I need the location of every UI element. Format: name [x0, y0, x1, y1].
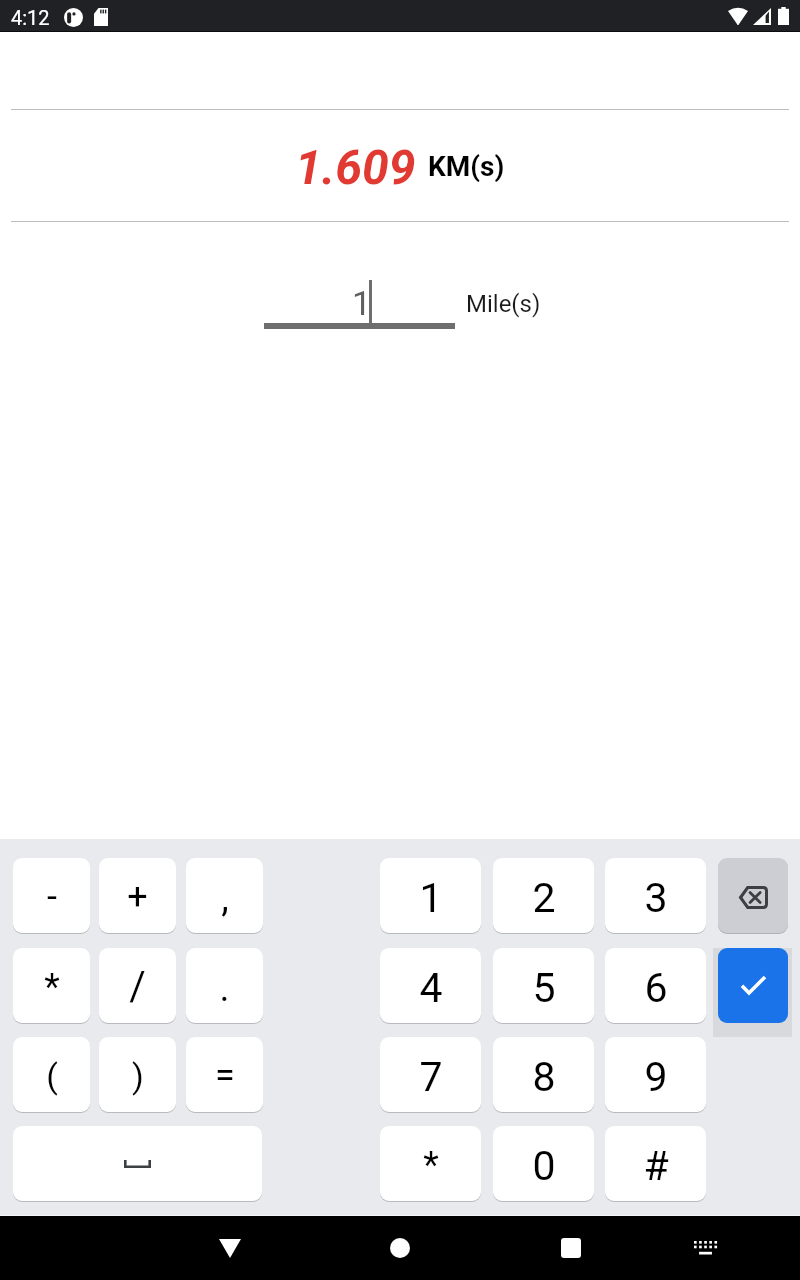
- button[interactable]: .: [186, 948, 263, 1023]
- button[interactable]: Home: [360, 1216, 440, 1280]
- staticText: #: [643, 1142, 669, 1190]
- staticText: /: [129, 963, 146, 1010]
- button[interactable]: (: [13, 1037, 90, 1112]
- staticText: 3: [644, 874, 668, 922]
- staticText: 6: [644, 964, 668, 1012]
- button[interactable]: 7: [380, 1037, 481, 1112]
- staticText: .: [219, 966, 230, 1011]
- button[interactable]: Space: [13, 1126, 262, 1201]
- staticText: 7: [419, 1053, 443, 1101]
- button[interactable]: 9: [605, 1037, 706, 1112]
- button[interactable]: -: [13, 858, 90, 933]
- staticText: Mile(s): [466, 290, 541, 318]
- button[interactable]: Backspace: [718, 858, 788, 933]
- button[interactable]: 0: [493, 1126, 594, 1201]
- staticText: 4: [419, 964, 443, 1012]
- staticText: ,: [221, 876, 229, 921]
- button[interactable]: =: [186, 1037, 263, 1112]
- staticText: (: [46, 1056, 58, 1096]
- button[interactable]: 8: [493, 1037, 594, 1112]
- staticText: 9: [644, 1053, 668, 1101]
- button[interactable]: 1: [380, 858, 481, 933]
- button[interactable]: 6: [605, 948, 706, 1023]
- staticText: 8: [532, 1053, 556, 1101]
- staticText: 1: [419, 874, 443, 922]
- button[interactable]: /: [99, 948, 176, 1023]
- button[interactable]: Switch keyboard: [665, 1216, 745, 1280]
- button[interactable]: Back: [190, 1216, 270, 1280]
- staticText: *: [44, 966, 60, 1008]
- staticText: -: [47, 876, 57, 918]
- button[interactable]: 5: [493, 948, 594, 1023]
- button[interactable]: +: [99, 858, 176, 933]
- button[interactable]: *: [380, 1126, 481, 1201]
- button[interactable]: Value input field: [264, 272, 455, 329]
- staticText: 4:12: [11, 6, 50, 29]
- staticText: 1.609: [295, 139, 416, 195]
- button[interactable]: Enter: [718, 948, 788, 1023]
- staticText: 0: [532, 1142, 556, 1190]
- staticText: ): [132, 1056, 144, 1096]
- button[interactable]: ,: [186, 858, 263, 933]
- staticText: 5: [532, 964, 556, 1012]
- staticText: 1: [352, 283, 372, 323]
- button[interactable]: 4: [380, 948, 481, 1023]
- staticText: +: [127, 876, 148, 918]
- button[interactable]: *: [13, 948, 90, 1023]
- staticText: =: [215, 1054, 235, 1096]
- other: Space: [124, 1160, 151, 1168]
- staticText: KM(s): [428, 150, 505, 183]
- staticText: 2: [532, 874, 556, 922]
- button[interactable]: Recent apps: [531, 1216, 611, 1280]
- button[interactable]: 2: [493, 858, 594, 933]
- staticText: *: [423, 1144, 439, 1186]
- button[interactable]: 3: [605, 858, 706, 933]
- button[interactable]: #: [605, 1126, 706, 1201]
- button[interactable]: ): [99, 1037, 176, 1112]
